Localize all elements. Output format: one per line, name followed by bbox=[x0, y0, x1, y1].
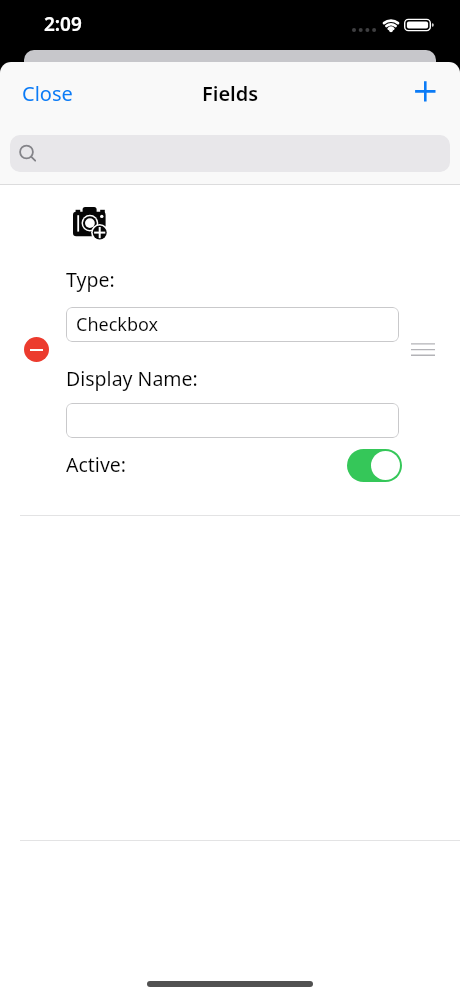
staticText: Display Name: bbox=[66, 365, 198, 392]
staticText: 2:09 bbox=[44, 11, 82, 37]
staticText: Checkbox bbox=[76, 312, 159, 337]
button[interactable] bbox=[408, 74, 442, 108]
button[interactable] bbox=[10, 135, 450, 172]
staticText: Fields bbox=[202, 80, 259, 107]
button[interactable] bbox=[24, 337, 49, 362]
button[interactable]: Checkbox bbox=[66, 307, 399, 342]
button[interactable] bbox=[407, 338, 439, 360]
staticText: Active: bbox=[66, 451, 127, 478]
button[interactable] bbox=[66, 403, 399, 438]
staticText: Type: bbox=[66, 266, 115, 293]
button[interactable] bbox=[347, 449, 402, 482]
button[interactable]: Close bbox=[10, 74, 85, 113]
staticText: Close bbox=[22, 80, 73, 107]
